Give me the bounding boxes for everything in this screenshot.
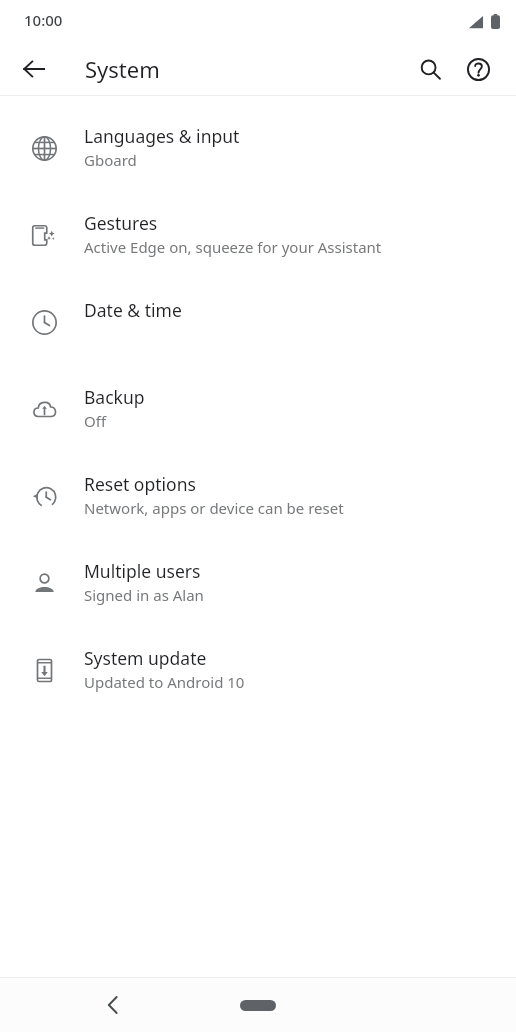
button[interactable]: Languages & input <box>0 107 516 194</box>
staticText: Active Edge on, squeeze for your Assista… <box>84 237 382 257</box>
button[interactable]: Gestures <box>0 194 516 281</box>
staticText: Date & time <box>84 298 182 322</box>
staticText: Signed in as Alan <box>84 585 204 605</box>
button[interactable]: Multiple users <box>0 542 516 629</box>
staticText: System <box>85 54 160 84</box>
staticText: Off <box>84 411 107 431</box>
staticText: Reset options <box>84 472 196 496</box>
button[interactable]: Help <box>454 45 502 93</box>
staticText: System update <box>84 646 207 670</box>
staticText: Gestures <box>84 211 158 235</box>
staticText: Backup <box>84 385 145 409</box>
staticText: Multiple users <box>84 559 201 583</box>
button[interactable]: Backup <box>0 368 516 455</box>
button[interactable]: Date & time <box>0 281 516 368</box>
staticText: Gboard <box>84 150 137 170</box>
staticText: Network, apps or device can be reset <box>84 498 344 518</box>
button[interactable]: Reset options <box>0 455 516 542</box>
staticText: 10:00 <box>24 10 63 30</box>
staticText: Updated to Android 10 <box>84 672 245 692</box>
button[interactable]: Back <box>88 981 136 1029</box>
button[interactable]: Search <box>406 45 454 93</box>
staticText: Languages & input <box>84 124 240 148</box>
button[interactable]: System update <box>0 629 516 716</box>
button[interactable]: Back <box>10 45 58 93</box>
button[interactable]: Home <box>218 988 298 1022</box>
